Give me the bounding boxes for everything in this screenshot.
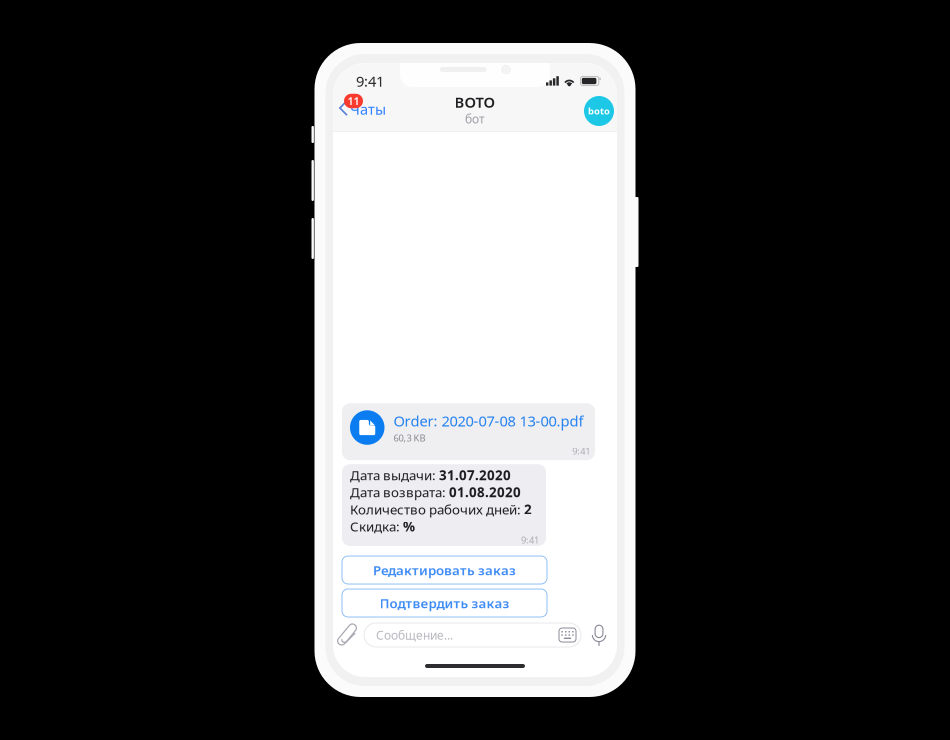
staticText: 01.08.2020 [449, 483, 521, 501]
staticText: бот [465, 111, 485, 127]
staticText: 60,3 KB [393, 432, 425, 444]
button[interactable]: Чаты [333, 96, 390, 128]
button[interactable]: Show keyboard [559, 628, 576, 642]
staticText: 9:41 [356, 71, 384, 91]
button[interactable]: Attach file [335, 619, 362, 651]
staticText: Дата выдачи: [350, 466, 439, 484]
staticText: Сообщение... [376, 627, 453, 643]
staticText: boto [588, 105, 610, 117]
staticText: Дата возврата: [350, 483, 449, 501]
staticText: Количество рабочих дней: [350, 500, 524, 518]
staticText: BOTO [454, 92, 495, 112]
staticText: 2 [524, 500, 532, 518]
staticText: 11 [347, 94, 359, 108]
button[interactable]: BOTO profile [584, 96, 614, 126]
staticText: 9:41 [572, 445, 590, 457]
staticText: Подтвердить заказ [379, 594, 509, 612]
button[interactable]: Record voice message [589, 624, 609, 646]
staticText: 9:41 [521, 534, 539, 546]
staticText: Чаты [350, 99, 386, 119]
staticText: Редактировать заказ [373, 561, 516, 579]
staticText: Скидка: [350, 517, 403, 535]
staticText: 31.07.2020 [439, 466, 511, 484]
button[interactable]: Редактировать заказ [342, 556, 547, 584]
staticText: % [403, 517, 415, 535]
button[interactable]: Подтвердить заказ [342, 589, 547, 617]
staticText: Order: 2020-07-08 13-00.pdf [393, 411, 583, 431]
